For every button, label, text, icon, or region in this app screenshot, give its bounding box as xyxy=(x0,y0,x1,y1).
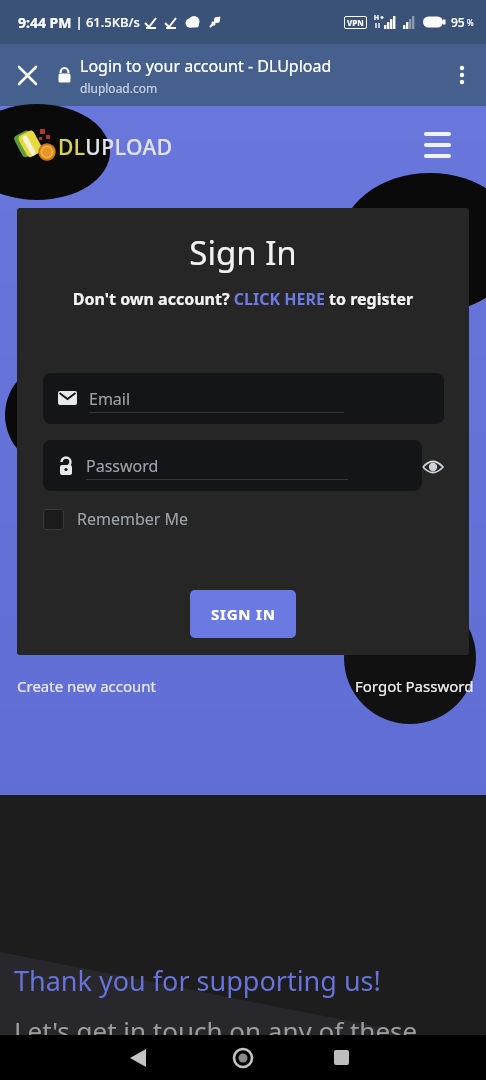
staticText: Password xyxy=(86,455,159,477)
staticText: Login to your account - DLUpload xyxy=(80,55,332,77)
button[interactable]: Email xyxy=(43,373,444,424)
button[interactable]: Create new account xyxy=(17,676,156,696)
button[interactable] xyxy=(438,51,486,99)
button[interactable]: DLUPLOAD xyxy=(14,126,173,168)
staticText: 95 xyxy=(451,14,465,30)
staticText: VPN xyxy=(347,17,364,28)
button[interactable]: Forgot Password xyxy=(355,676,474,696)
button[interactable] xyxy=(0,48,54,102)
button[interactable]: Don't own account? CLICK HERE to registe… xyxy=(17,288,469,310)
button[interactable] xyxy=(422,459,444,475)
staticText: 9:44 PM xyxy=(18,13,72,32)
staticText: Remember Me xyxy=(77,508,189,530)
staticText: | 61.5KB/s xyxy=(72,13,144,31)
staticText: Email xyxy=(89,388,131,410)
staticText: SIGN IN xyxy=(211,604,276,624)
button[interactable] xyxy=(219,1035,267,1080)
staticText: dlupload.com xyxy=(80,80,158,96)
staticText: % xyxy=(465,17,474,28)
staticText: Sign In xyxy=(17,230,469,275)
button[interactable]: Login to your account - DLUpload xyxy=(80,55,438,96)
staticText: DLUPLOAD xyxy=(58,133,173,162)
button[interactable] xyxy=(317,1035,365,1080)
button[interactable] xyxy=(114,1035,162,1080)
button[interactable]: SIGN IN xyxy=(190,590,296,638)
button[interactable] xyxy=(424,132,454,164)
staticText: Let's get in touch on any of these xyxy=(14,1013,418,1048)
button[interactable]: Password xyxy=(43,440,422,491)
button[interactable]: Remember Me xyxy=(43,508,189,530)
staticText: Thank you for supporting us! xyxy=(14,962,381,999)
